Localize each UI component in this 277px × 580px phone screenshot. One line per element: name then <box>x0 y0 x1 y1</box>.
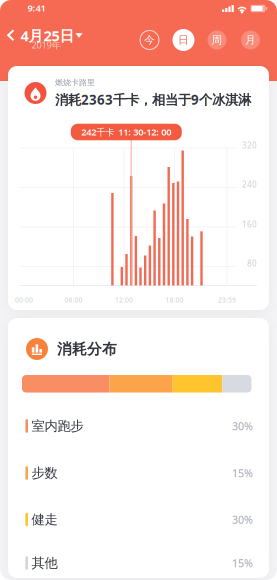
staticText: 其他 <box>32 555 58 571</box>
staticText: 消耗2363千卡，相当于9个冰淇淋 <box>55 91 251 108</box>
staticText: 06:00 <box>64 296 82 304</box>
staticText: 23:59 <box>218 296 236 304</box>
staticText: 周 <box>211 33 222 46</box>
staticText: 室内跑步 <box>32 418 84 434</box>
staticText: 160 <box>242 219 257 230</box>
staticText: 月 <box>245 33 256 46</box>
button[interactable]: 日 <box>172 29 194 51</box>
staticText: 消耗分布 <box>57 340 117 358</box>
button[interactable]: 4月25日 <box>19 22 95 54</box>
staticText: 9:41 <box>27 2 45 14</box>
staticText: 30% <box>232 512 253 527</box>
button[interactable]: 月 <box>239 29 261 51</box>
staticText: 00:00 <box>15 296 33 304</box>
staticText: 80 <box>247 258 257 269</box>
staticText: 30% <box>232 419 253 433</box>
staticText: 18:00 <box>165 296 183 304</box>
staticText: 15% <box>232 466 253 480</box>
button[interactable]: 今 <box>138 29 160 51</box>
staticText: 240 <box>242 179 257 190</box>
staticText: 健走 <box>32 511 58 528</box>
staticText: 242千卡 11: 30-12: 00 <box>81 126 171 138</box>
staticText: 燃烧卡路里 <box>55 78 95 87</box>
staticText: 4月25日 <box>20 26 74 45</box>
staticText: 日 <box>178 33 189 46</box>
staticText: 今 <box>144 33 155 46</box>
staticText: 320 <box>242 140 257 151</box>
staticText: 步数 <box>32 465 58 481</box>
button[interactable]: 周 <box>206 29 228 51</box>
staticText: 2019年 <box>31 39 60 51</box>
button[interactable]: 返回 <box>3 26 19 44</box>
staticText: 12:00 <box>115 296 133 304</box>
staticText: 15% <box>232 556 253 570</box>
